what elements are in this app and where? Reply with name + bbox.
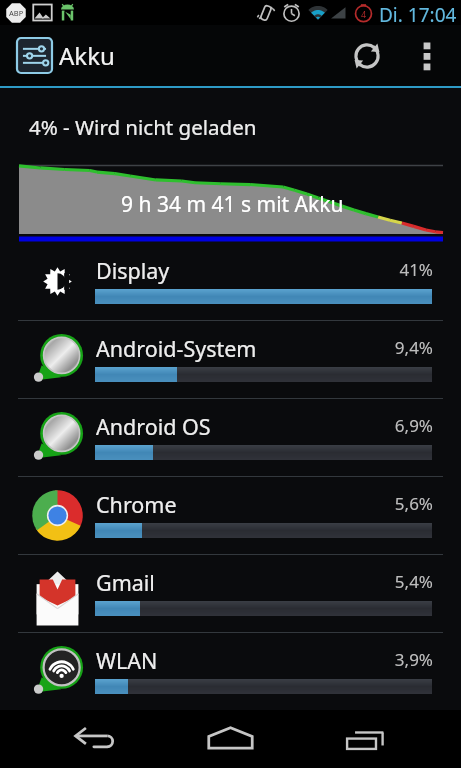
button[interactable]: Back — [52, 710, 140, 768]
button[interactable]: Android OS — [0, 399, 461, 476]
button[interactable]: Display — [0, 243, 461, 320]
button[interactable]: WLAN — [0, 633, 461, 710]
staticText: 3,9% — [350, 648, 433, 671]
button[interactable]: Home — [186, 710, 274, 768]
staticText: 4 — [361, 8, 367, 20]
button[interactable]: Gmail — [0, 555, 461, 632]
staticText: 6,9% — [350, 414, 433, 437]
staticText: 5,6% — [350, 492, 433, 515]
button[interactable]: Recents — [323, 710, 411, 768]
staticText: 5,4% — [350, 570, 433, 593]
staticText: Display — [96, 256, 170, 285]
staticText: Android-System — [96, 334, 257, 363]
staticText: Android OS — [96, 412, 211, 441]
staticText: 9 h 34 m 41 s mit Akku — [121, 190, 344, 219]
button[interactable]: Android-System — [0, 321, 461, 398]
staticText: Di. 17:04 — [379, 2, 457, 27]
button[interactable]: Refresh — [336, 25, 398, 86]
staticText: WLAN — [96, 646, 158, 675]
staticText: 9,4% — [350, 336, 433, 359]
button[interactable]: Chrome — [0, 477, 461, 554]
staticText: 41% — [350, 258, 433, 281]
staticText: Akku — [59, 39, 115, 72]
staticText: Chrome — [96, 490, 177, 519]
staticText: Gmail — [96, 568, 155, 597]
button[interactable]: More options — [398, 27, 456, 85]
staticText: ABP — [9, 8, 24, 18]
staticText: 4% - Wird nicht geladen — [29, 113, 257, 141]
